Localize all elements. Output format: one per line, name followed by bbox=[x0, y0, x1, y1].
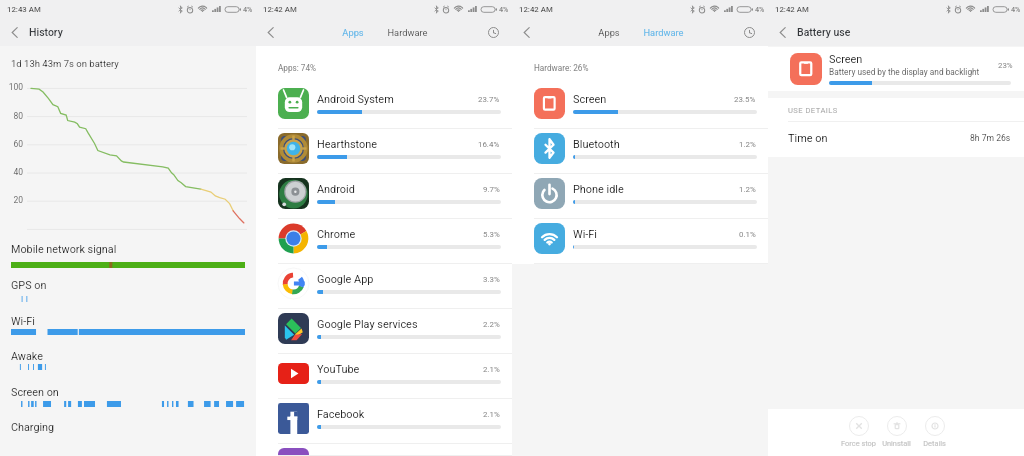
staticText: Force stop bbox=[841, 439, 876, 448]
button[interactable]: Time on bbox=[768, 122, 1024, 157]
button[interactable]: Apps bbox=[338, 18, 368, 46]
staticText: Facebook bbox=[317, 408, 365, 421]
staticText: 23.7% bbox=[478, 95, 500, 104]
staticText: 12:42 AM bbox=[263, 5, 297, 14]
staticText: 2.2% bbox=[483, 320, 500, 329]
staticText: 100 bbox=[0, 82, 23, 92]
staticText: 5.3% bbox=[483, 230, 500, 239]
staticText: History bbox=[29, 26, 63, 38]
staticText: 2.1% bbox=[483, 365, 500, 374]
staticText: 4% bbox=[755, 5, 765, 13]
staticText: Awake bbox=[11, 350, 43, 363]
staticText: Hardware: 26% bbox=[534, 63, 589, 73]
staticText: 23% bbox=[998, 61, 1013, 70]
staticText: Details bbox=[923, 439, 946, 448]
staticText: Apps bbox=[598, 27, 620, 38]
staticText: 0.1% bbox=[739, 230, 756, 239]
button[interactable]: Phone idle bbox=[512, 174, 768, 219]
staticText: 8h 7m 26s bbox=[970, 133, 1011, 143]
staticText: Hardware bbox=[643, 27, 684, 38]
staticText: Apps bbox=[342, 27, 364, 38]
staticText: 12:43 AM bbox=[7, 5, 41, 14]
staticText: Google App bbox=[317, 273, 374, 286]
staticText: Phone idle bbox=[573, 183, 624, 196]
staticText: Chrome bbox=[317, 228, 356, 241]
button[interactable]: Android bbox=[256, 174, 512, 219]
staticText: 12:42 AM bbox=[775, 5, 809, 14]
button[interactable]: Wi-Fi bbox=[0, 318, 256, 336]
staticText: Hearthstone bbox=[317, 138, 378, 151]
staticText: YouTube bbox=[317, 363, 360, 376]
button[interactable]: Hardware bbox=[638, 18, 689, 46]
staticText: Screen bbox=[573, 93, 607, 106]
staticText: Battery use bbox=[797, 26, 851, 38]
button[interactable]: Screen bbox=[768, 47, 1024, 91]
staticText: Charging bbox=[11, 421, 55, 434]
staticText: USE DETAILS bbox=[788, 106, 838, 115]
staticText: 80 bbox=[0, 111, 23, 121]
button[interactable]: Facebook bbox=[256, 399, 512, 444]
button[interactable]: Uninstall bbox=[877, 416, 916, 448]
button[interactable]: Screen bbox=[512, 84, 768, 129]
staticText: 23.5% bbox=[734, 95, 756, 104]
staticText: Hardware bbox=[387, 27, 428, 38]
staticText: Mobile network signal bbox=[11, 243, 117, 256]
staticText: GPS on bbox=[11, 279, 47, 292]
button[interactable]: Back bbox=[512, 18, 540, 46]
staticText: Screen on bbox=[11, 386, 59, 399]
button[interactable]: Google App bbox=[256, 264, 512, 309]
staticText: Android bbox=[317, 183, 355, 196]
staticText: 3.3% bbox=[483, 275, 500, 284]
staticText: 60 bbox=[0, 139, 23, 149]
button[interactable]: Back bbox=[0, 18, 28, 46]
button[interactable]: Wi-Fi bbox=[512, 219, 768, 264]
button[interactable]: Awake bbox=[0, 353, 256, 371]
button[interactable]: Bluetooth bbox=[512, 129, 768, 174]
staticText: 1.2% bbox=[739, 185, 756, 194]
button[interactable]: Details bbox=[915, 416, 954, 448]
button[interactable]: YouTube bbox=[256, 354, 512, 399]
button[interactable] bbox=[256, 444, 512, 456]
button[interactable]: Mobile network signal bbox=[0, 246, 256, 269]
staticText: 4% bbox=[499, 5, 509, 13]
button[interactable]: History bbox=[735, 18, 763, 46]
staticText: Wi-Fi bbox=[573, 228, 597, 241]
button[interactable]: Force stop bbox=[839, 416, 878, 448]
staticText: Time on bbox=[788, 132, 828, 145]
staticText: 1d 13h 43m 7s on battery bbox=[11, 58, 119, 69]
button[interactable]: Back bbox=[256, 18, 284, 46]
button[interactable]: Chrome bbox=[256, 219, 512, 264]
staticText: Uninstall bbox=[882, 439, 911, 448]
staticText: 1.2% bbox=[739, 140, 756, 149]
button[interactable]: Android System bbox=[256, 84, 512, 129]
staticText: Battery used by the display and backligh… bbox=[829, 67, 980, 77]
staticText: 16.4% bbox=[478, 140, 500, 149]
staticText: Android System bbox=[317, 93, 394, 106]
staticText: 4% bbox=[243, 5, 253, 13]
button[interactable]: Google Play services bbox=[256, 309, 512, 354]
staticText: 20 bbox=[0, 195, 23, 205]
staticText: Wi-Fi bbox=[11, 315, 35, 328]
button[interactable]: Hearthstone bbox=[256, 129, 512, 174]
staticText: 12:42 AM bbox=[519, 5, 553, 14]
button[interactable]: Apps bbox=[594, 18, 624, 46]
staticText: Bluetooth bbox=[573, 138, 620, 151]
staticText: 2.1% bbox=[483, 410, 500, 419]
button[interactable]: Hardware bbox=[382, 18, 433, 46]
staticText: 40 bbox=[0, 167, 23, 177]
staticText: Apps: 74% bbox=[278, 63, 316, 73]
button[interactable]: History bbox=[479, 18, 507, 46]
staticText: Screen bbox=[829, 53, 863, 66]
staticText: 4% bbox=[1011, 5, 1021, 13]
staticText: Google Play services bbox=[317, 318, 418, 331]
button[interactable]: GPS on bbox=[0, 282, 256, 303]
staticText: 9.7% bbox=[483, 185, 500, 194]
button[interactable]: Back bbox=[768, 18, 796, 46]
button[interactable]: Screen on bbox=[0, 389, 256, 408]
